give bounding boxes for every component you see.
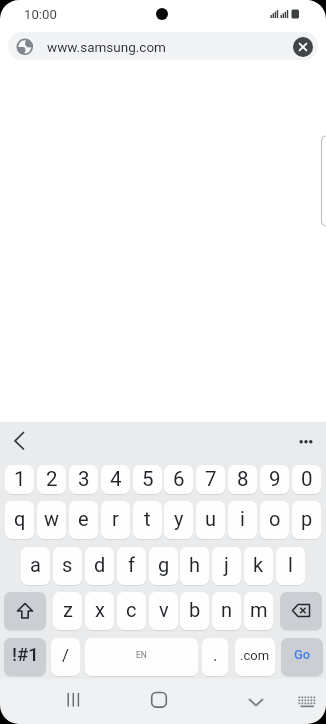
staticText: 4 [110,467,122,491]
button[interactable]: 2 [37,465,66,494]
button[interactable] [4,592,46,630]
button[interactable] [294,430,318,452]
button[interactable]: i [228,501,257,539]
staticText: m [250,598,268,621]
button[interactable]: k [244,547,273,585]
staticText: q [14,507,26,530]
staticText: w [44,507,60,530]
staticText: x [95,598,105,621]
staticText: !#1 [12,644,39,666]
button[interactable]: !#1 [4,638,46,676]
button[interactable]: / [51,638,80,676]
button[interactable]: EN [85,638,198,676]
button[interactable]: u [196,501,225,539]
staticText: h [189,553,201,576]
button[interactable]: 5 [133,465,162,494]
staticText: f [128,553,135,576]
button[interactable]: g [149,547,178,585]
button[interactable]: e [69,501,98,539]
button[interactable]: z [53,592,82,630]
button[interactable]: 9 [260,465,289,494]
staticText: EN [136,650,147,660]
staticText: n [221,598,233,621]
button[interactable]: w [37,501,66,539]
button[interactable]: c [117,592,146,630]
staticText: i [240,507,245,530]
button[interactable]: 4 [101,465,130,494]
button[interactable]: v [149,592,178,630]
staticText: e [78,507,89,530]
button[interactable]: p [292,501,321,539]
button[interactable]: 3 [69,465,98,494]
button[interactable]: 0 [292,465,321,494]
staticText: / [62,645,70,665]
staticText: d [94,553,106,576]
staticText: s [62,553,73,576]
staticText: 7 [205,467,217,491]
button[interactable] [145,690,173,710]
staticText: a [30,553,41,576]
button[interactable]: l [276,547,305,585]
staticText: k [253,553,264,576]
staticText: 2 [46,467,58,491]
staticText: v [159,598,169,621]
staticText: 8 [237,467,249,491]
staticText: o [269,507,281,530]
button[interactable]: h [180,547,209,585]
button[interactable]: m [244,592,273,630]
button[interactable]: j [212,547,241,585]
staticText: 6 [173,467,185,491]
staticText: 9 [269,467,281,491]
button[interactable]: 6 [164,465,193,494]
staticText: j [224,553,229,576]
button[interactable]: o [260,501,289,539]
button[interactable]: d [85,547,114,585]
button[interactable] [296,694,318,712]
button[interactable]: r [101,501,130,539]
button[interactable]: Go [281,638,323,676]
button[interactable] [293,37,313,57]
button[interactable]: f [117,547,146,585]
button[interactable]: a [21,547,50,585]
staticText: t [144,507,151,530]
button[interactable] [280,592,322,630]
staticText: 10:00 [24,7,57,22]
staticText: u [205,507,217,530]
staticText: b [189,598,201,621]
button[interactable]: n [212,592,241,630]
staticText: p [301,507,313,530]
button[interactable]: 1 [5,465,34,494]
staticText: g [158,553,170,576]
staticText: Go [294,647,311,662]
staticText: 0 [301,467,313,491]
staticText: 3 [78,467,90,491]
button[interactable]: .com [235,638,275,676]
staticText: 5 [142,467,154,491]
button[interactable]: . [202,638,228,676]
button[interactable]: t [133,501,162,539]
staticText: www.samsung.com [47,39,166,55]
staticText: l [288,553,293,576]
staticText: z [63,598,73,621]
button[interactable] [59,690,87,710]
button[interactable]: s [53,547,82,585]
button[interactable]: y [164,501,193,539]
staticText: 1 [14,467,26,491]
staticText: . [213,645,218,665]
staticText: r [112,507,119,530]
button[interactable] [243,694,269,712]
button[interactable] [8,32,318,60]
staticText: y [174,507,184,530]
button[interactable]: x [85,592,114,630]
button[interactable]: q [5,501,34,539]
staticText: .com [240,648,270,663]
button[interactable]: 7 [196,465,225,494]
button[interactable]: b [180,592,209,630]
button[interactable] [6,428,32,454]
button[interactable]: 8 [228,465,257,494]
staticText: c [126,598,137,621]
